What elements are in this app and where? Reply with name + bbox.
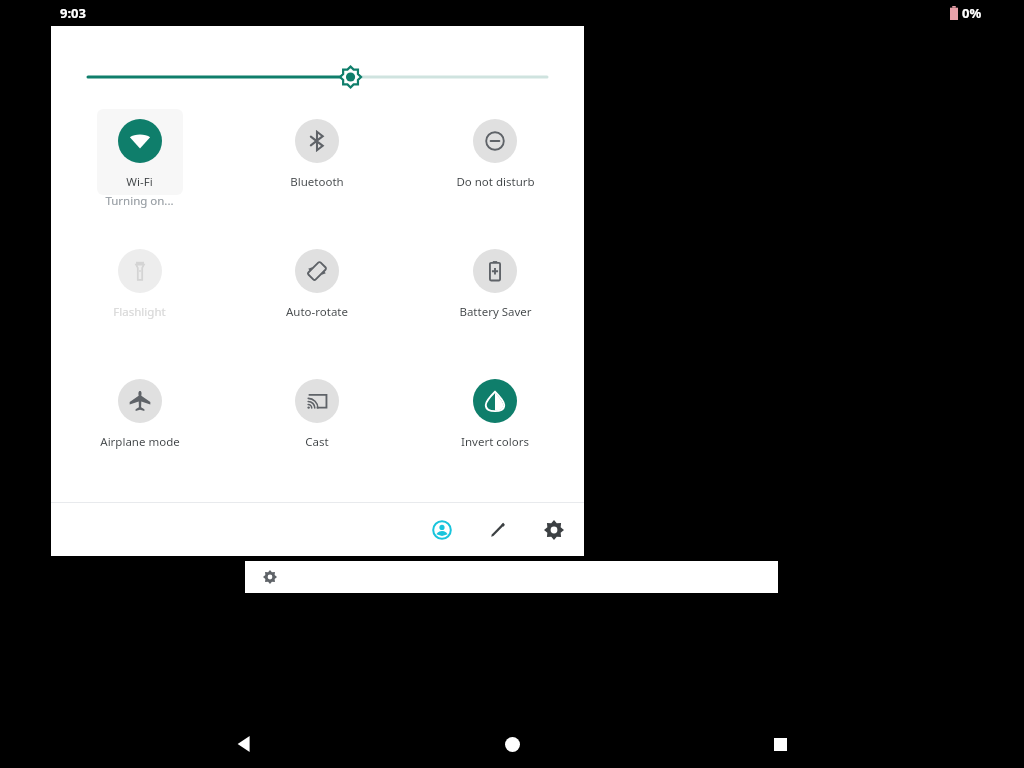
staticText: 0% (962, 4, 982, 22)
button[interactable]: Cast (228, 363, 406, 493)
button[interactable]: Settings (534, 510, 574, 550)
button[interactable]: Do not disturb (406, 103, 584, 233)
staticText: Battery Saver (459, 304, 532, 320)
staticText: Airplane mode (100, 434, 180, 450)
button[interactable]: User (422, 510, 462, 550)
button[interactable]: Invert colors (406, 363, 584, 493)
button[interactable]: Auto-rotate (228, 233, 406, 363)
button[interactable]: Flashlight (51, 233, 228, 363)
staticText: Wi-Fi (126, 174, 153, 190)
button[interactable]: Wi-Fi (51, 103, 228, 233)
staticText: Auto-rotate (286, 304, 348, 320)
button[interactable]: Battery Saver (406, 233, 584, 363)
staticText: 9:03 (60, 4, 86, 22)
staticText: Bluetooth (290, 174, 344, 190)
staticText: Flashlight (113, 304, 166, 320)
button[interactable]: Bluetooth (228, 103, 406, 233)
button[interactable]: Back (220, 720, 268, 768)
button[interactable]: Brightness (51, 26, 584, 103)
button[interactable]: Airplane mode (51, 363, 228, 493)
button[interactable]: Home (488, 720, 536, 768)
button[interactable]: Recents (756, 720, 804, 768)
other: App settings (263, 570, 277, 584)
staticText: Cast (305, 434, 329, 450)
staticText: Do not disturb (456, 174, 535, 190)
staticText: Invert colors (461, 434, 529, 450)
button[interactable]: Edit (478, 510, 518, 550)
staticText: Turning on... (105, 193, 174, 209)
button[interactable]: App settings (245, 561, 778, 593)
